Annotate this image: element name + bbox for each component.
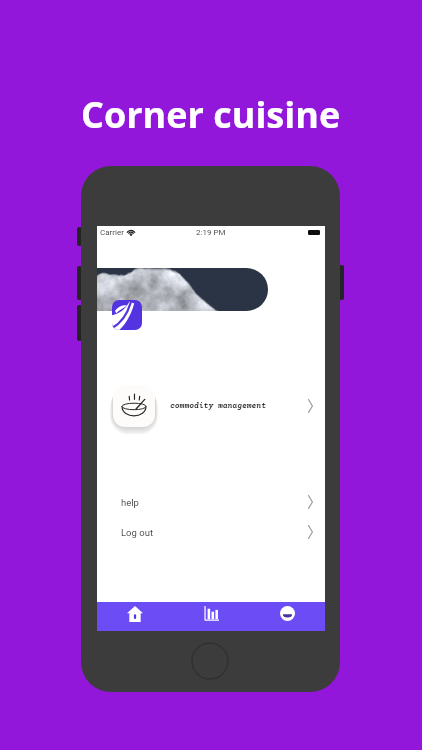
button[interactable]: Profile — [249, 602, 325, 631]
staticText: Corner cuisine — [81, 90, 341, 139]
staticText: Carrier — [100, 228, 124, 237]
staticText: help — [121, 497, 139, 508]
button[interactable]: help — [97, 488, 325, 516]
staticText: commodity management — [170, 402, 266, 411]
button[interactable]: Statistics — [173, 602, 249, 631]
staticText: 2:19 PM — [196, 228, 226, 237]
staticText: Log out — [121, 527, 153, 538]
button[interactable]: Log out — [97, 518, 325, 546]
button[interactable]: Home — [97, 602, 173, 631]
button[interactable]: commodity management — [97, 378, 325, 434]
